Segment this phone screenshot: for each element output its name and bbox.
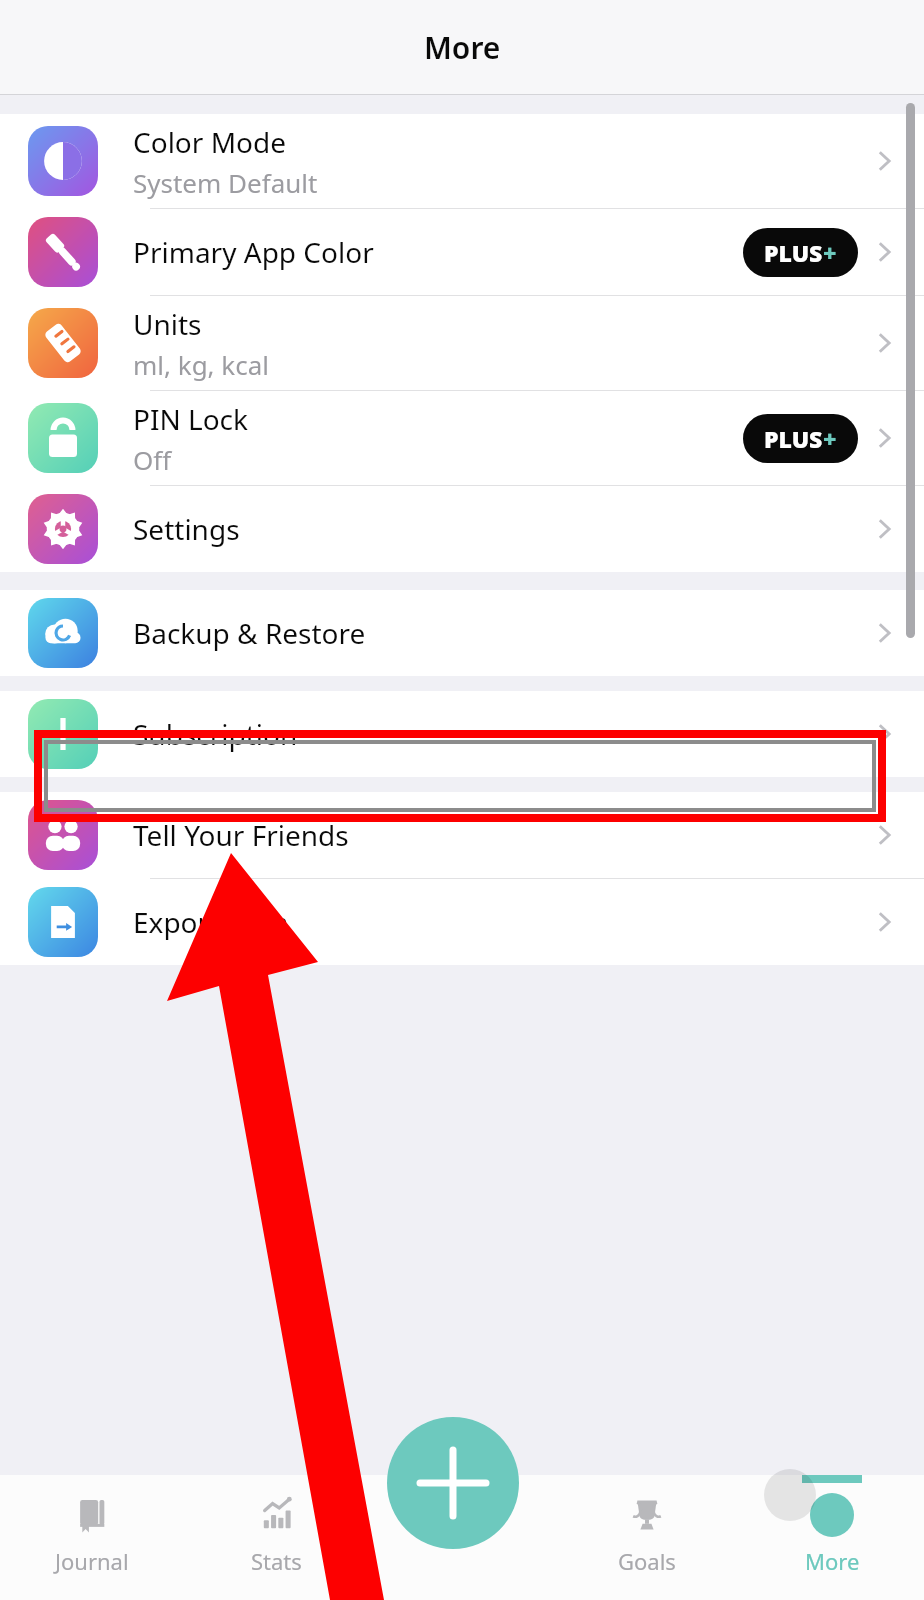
staticText: Units: [133, 305, 202, 343]
staticText: Off: [133, 442, 172, 477]
button[interactable]: Stats: [184, 1475, 369, 1600]
button[interactable]: Export Data: [0, 879, 924, 965]
staticText: Primary App Color: [133, 233, 374, 271]
staticText: More: [424, 27, 501, 68]
button[interactable]: Settings: [0, 486, 924, 572]
button[interactable]: Primary App Color: [0, 209, 924, 295]
button[interactable]: Color Mode: [0, 114, 924, 208]
staticText: More: [805, 1546, 860, 1576]
staticText: Tell Your Friends: [133, 816, 349, 854]
staticText: Backup & Restore: [133, 614, 366, 652]
staticText: System Default: [133, 165, 318, 200]
staticText: Subscription: [133, 715, 298, 753]
button[interactable]: Tell Your Friends: [0, 792, 924, 878]
button[interactable]: Backup & Restore: [0, 590, 924, 676]
staticText: Settings: [133, 510, 240, 548]
staticText: Color Mode: [133, 123, 286, 161]
staticText: Goals: [618, 1546, 676, 1576]
button[interactable]: More: [739, 1475, 924, 1600]
button[interactable]: Add entry: [419, 1462, 505, 1548]
staticText: PLUS: [764, 237, 823, 268]
staticText: ml, kg, kcal: [133, 347, 270, 382]
button[interactable]: Units: [0, 296, 924, 390]
staticText: +: [823, 237, 837, 268]
staticText: Journal: [55, 1546, 129, 1576]
staticText: +: [823, 423, 837, 454]
button[interactable]: Journal: [0, 1475, 184, 1600]
staticText: PIN Lock: [133, 400, 248, 438]
button[interactable]: Subscription: [0, 691, 924, 777]
button[interactable]: Goals: [554, 1475, 739, 1600]
staticText: Export Data: [133, 903, 289, 941]
staticText: PLUS: [764, 423, 823, 454]
staticText: Stats: [251, 1546, 302, 1576]
button[interactable]: PIN Lock: [0, 391, 924, 485]
